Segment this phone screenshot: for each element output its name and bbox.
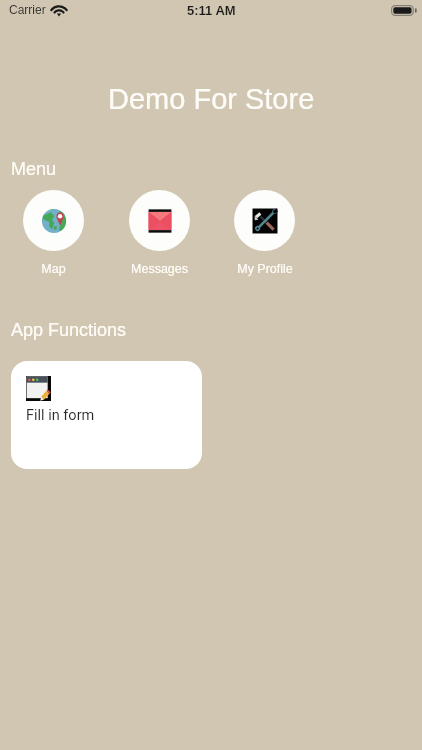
other: Battery full: [391, 5, 417, 16]
staticText: Map: [41, 262, 66, 276]
staticText: App Functions: [11, 320, 127, 340]
staticText: Demo For Store: [108, 83, 315, 115]
button[interactable]: Messages: [107, 190, 212, 276]
staticText: 5:11 AM: [187, 3, 236, 18]
button[interactable]: Fill in form: [11, 361, 202, 469]
other: Wi-Fi signal: [51, 5, 67, 16]
staticText: Messages: [131, 262, 188, 276]
staticText: My Profile: [237, 262, 293, 276]
staticText: Carrier: [9, 3, 46, 16]
staticText: Fill in form: [26, 407, 95, 424]
staticText: Menu: [11, 159, 57, 179]
button[interactable]: My Profile: [212, 190, 317, 276]
button[interactable]: Map: [1, 190, 106, 276]
